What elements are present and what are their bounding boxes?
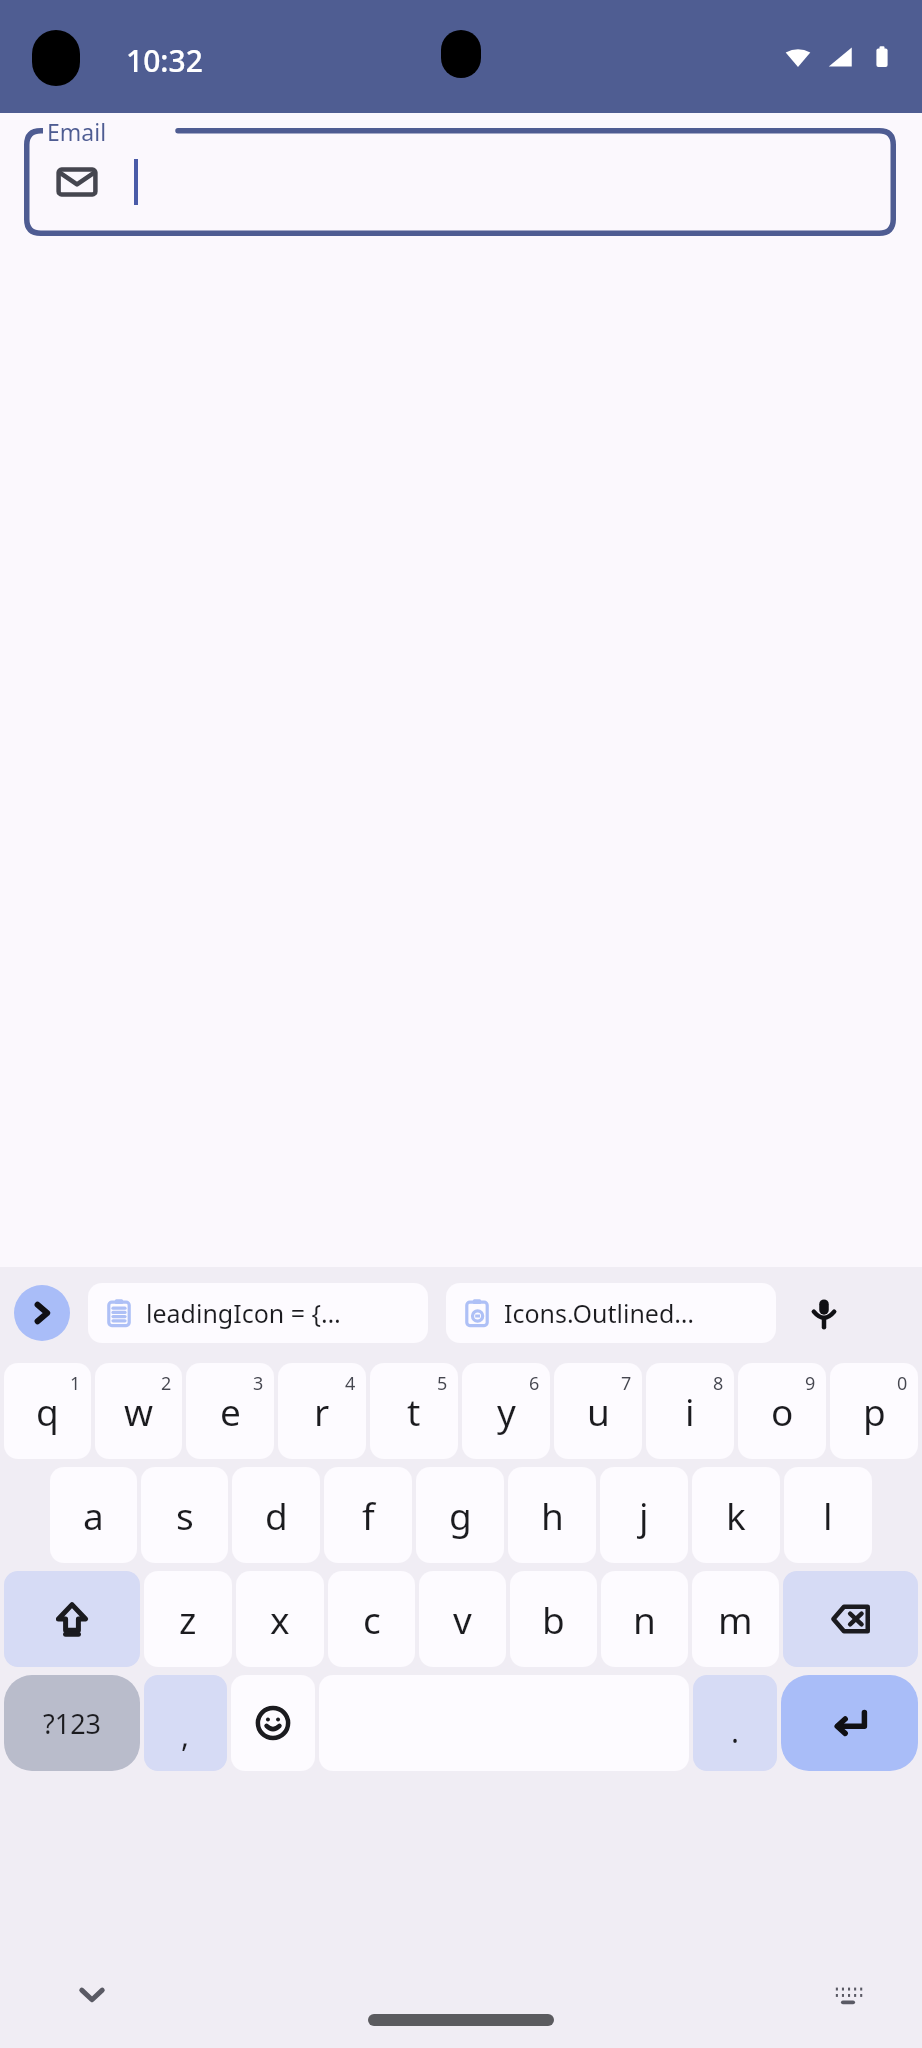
button[interactable]: j — [600, 1467, 688, 1563]
button[interactable]: f — [324, 1467, 412, 1563]
button[interactable]: Backspace — [783, 1571, 918, 1667]
staticText: 2 — [161, 1371, 172, 1396]
button[interactable]: r — [278, 1363, 366, 1459]
button[interactable]: p — [830, 1363, 918, 1459]
button[interactable]: Enter — [781, 1675, 918, 1771]
staticText: f — [362, 1490, 375, 1540]
staticText: 4 — [345, 1371, 356, 1396]
button[interactable]: . — [693, 1675, 777, 1771]
staticText: p — [863, 1386, 886, 1436]
staticText: 10:32 — [126, 40, 203, 81]
button[interactable]: z — [144, 1571, 232, 1667]
staticText: e — [220, 1386, 241, 1436]
button[interactable]: y — [462, 1363, 550, 1459]
button[interactable]: n — [601, 1571, 688, 1667]
button[interactable]: Hide keyboard — [64, 1966, 120, 2022]
button[interactable]: w — [95, 1363, 182, 1459]
button[interactable]: Emoji — [231, 1675, 315, 1771]
button[interactable]: Shift — [4, 1571, 140, 1667]
staticText: l — [823, 1490, 833, 1540]
button[interactable]: t — [370, 1363, 458, 1459]
staticText: . — [731, 1711, 740, 1752]
button[interactable]: e — [186, 1363, 274, 1459]
button[interactable]: c — [328, 1571, 415, 1667]
button[interactable]: Change keyboard — [820, 1966, 876, 2022]
staticText: ?123 — [43, 1705, 102, 1742]
staticText: c — [363, 1594, 381, 1644]
staticText: leadingIcon = {… — [146, 1296, 341, 1330]
staticText: r — [314, 1386, 330, 1436]
button[interactable]: v — [419, 1571, 506, 1667]
staticText: u — [587, 1386, 610, 1436]
staticText: m — [718, 1594, 753, 1644]
staticText: s — [176, 1490, 194, 1540]
staticText: h — [541, 1490, 564, 1540]
staticText: 0 — [897, 1371, 908, 1396]
button[interactable]: leadingIcon = {… — [88, 1283, 428, 1343]
staticText: 3 — [253, 1371, 264, 1396]
staticText: a — [83, 1490, 104, 1540]
button[interactable]: q — [4, 1363, 91, 1459]
button[interactable]: i — [646, 1363, 734, 1459]
button[interactable]: o — [738, 1363, 826, 1459]
button[interactable]: Email — [24, 128, 896, 236]
staticText: n — [633, 1594, 656, 1644]
button[interactable]: h — [508, 1467, 596, 1563]
staticText: z — [179, 1594, 197, 1644]
staticText: b — [542, 1594, 565, 1644]
button[interactable]: Expand suggestions — [14, 1285, 70, 1341]
button[interactable]: a — [50, 1467, 137, 1563]
button[interactable]: Icons.Outlined… — [446, 1283, 776, 1343]
staticText: Icons.Outlined… — [504, 1296, 695, 1330]
button[interactable]: d — [232, 1467, 320, 1563]
staticText: d — [265, 1490, 288, 1540]
staticText: g — [449, 1490, 472, 1540]
staticText: 9 — [805, 1371, 816, 1396]
button[interactable]: x — [236, 1571, 324, 1667]
button[interactable]: Voice input — [796, 1285, 852, 1341]
staticText: w — [124, 1386, 154, 1436]
button[interactable]: k — [692, 1467, 780, 1563]
staticText: q — [36, 1386, 59, 1436]
staticText: , — [181, 1715, 190, 1756]
staticText: k — [726, 1490, 746, 1540]
button[interactable]: g — [416, 1467, 504, 1563]
staticText: j — [639, 1490, 649, 1540]
staticText: i — [685, 1386, 695, 1436]
button[interactable]: s — [141, 1467, 228, 1563]
staticText: y — [497, 1386, 516, 1436]
staticText: t — [407, 1386, 421, 1436]
staticText: Email — [47, 116, 107, 147]
staticText: 5 — [437, 1371, 448, 1396]
button[interactable]: ?123 — [4, 1675, 140, 1771]
button[interactable]: , — [144, 1675, 227, 1771]
button[interactable]: b — [510, 1571, 597, 1667]
staticText: 7 — [621, 1371, 632, 1396]
staticText: o — [771, 1386, 794, 1436]
button[interactable]: u — [554, 1363, 642, 1459]
staticText: 8 — [713, 1371, 724, 1396]
staticText: 1 — [70, 1371, 81, 1396]
staticText: 6 — [529, 1371, 540, 1396]
staticText: v — [453, 1594, 472, 1644]
button[interactable]: l — [784, 1467, 872, 1563]
staticText: x — [270, 1594, 290, 1644]
button[interactable]: m — [692, 1571, 779, 1667]
